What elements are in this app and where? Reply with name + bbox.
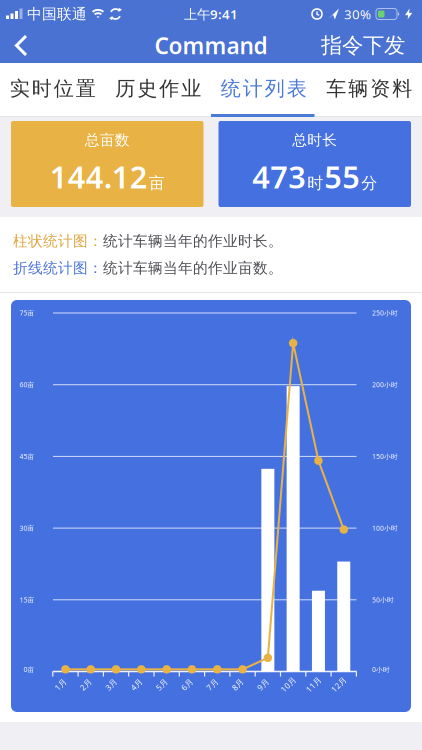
staticText: 统计车辆当年的作业时长。 <box>103 232 283 250</box>
staticText: 50小时 <box>372 595 394 604</box>
staticText: 4月 <box>130 679 143 690</box>
staticText: 0亩 <box>23 665 34 674</box>
staticText: 100小时 <box>372 524 398 533</box>
staticText: 45亩 <box>19 452 34 461</box>
staticText: 200小时 <box>372 380 398 389</box>
staticText: 上午9:41 <box>184 5 238 23</box>
staticText: 9月 <box>256 679 269 690</box>
staticText: 2月 <box>79 679 92 690</box>
staticText: 250小时 <box>372 309 398 317</box>
button[interactable]: Back <box>0 28 28 63</box>
staticText: Command <box>154 30 267 60</box>
staticText: 统计车辆当年的作业亩数。 <box>103 259 283 277</box>
staticText: 8月 <box>231 679 244 690</box>
staticText: 中国联通 <box>27 5 87 23</box>
staticText: 55 <box>324 156 360 197</box>
staticText: 1月 <box>54 679 67 690</box>
staticText: 总亩数 <box>85 131 130 149</box>
staticText: 折线统计图： <box>13 259 103 277</box>
staticText: 144.12 <box>50 156 148 197</box>
staticText: 3月 <box>104 679 117 690</box>
staticText: 指令下发 <box>321 32 405 59</box>
staticText: 473 <box>252 156 306 197</box>
staticText: 时 <box>307 173 323 193</box>
staticText: 亩 <box>149 173 165 193</box>
staticText: 0小时 <box>372 665 390 674</box>
staticText: 150小时 <box>372 452 398 461</box>
staticText: 6月 <box>180 679 193 690</box>
staticText: 统计列表 <box>221 76 307 101</box>
staticText: 实时位置 <box>10 76 96 101</box>
staticText: 车辆资料 <box>326 76 412 101</box>
staticText: 5月 <box>155 679 168 690</box>
staticText: 60亩 <box>19 380 34 389</box>
button[interactable]: 车辆资料 <box>316 63 422 114</box>
button[interactable]: 指令下发 <box>321 26 422 65</box>
staticText: 分 <box>361 173 377 193</box>
staticText: 10月 <box>279 679 297 690</box>
staticText: 12月 <box>330 679 348 690</box>
staticText: 30亩 <box>19 524 34 533</box>
staticText: 15亩 <box>19 595 34 604</box>
staticText: 11月 <box>304 679 322 690</box>
staticText: 历史作业 <box>115 76 201 101</box>
staticText: 75亩 <box>19 309 34 317</box>
staticText: 总时长 <box>292 131 337 149</box>
button[interactable]: 实时位置 <box>0 63 105 114</box>
staticText: 7月 <box>206 679 219 690</box>
staticText: 柱状统计图： <box>13 232 103 250</box>
staticText: 30% <box>344 5 371 23</box>
button[interactable]: 历史作业 <box>105 63 211 114</box>
button[interactable]: 统计列表 <box>211 63 316 114</box>
